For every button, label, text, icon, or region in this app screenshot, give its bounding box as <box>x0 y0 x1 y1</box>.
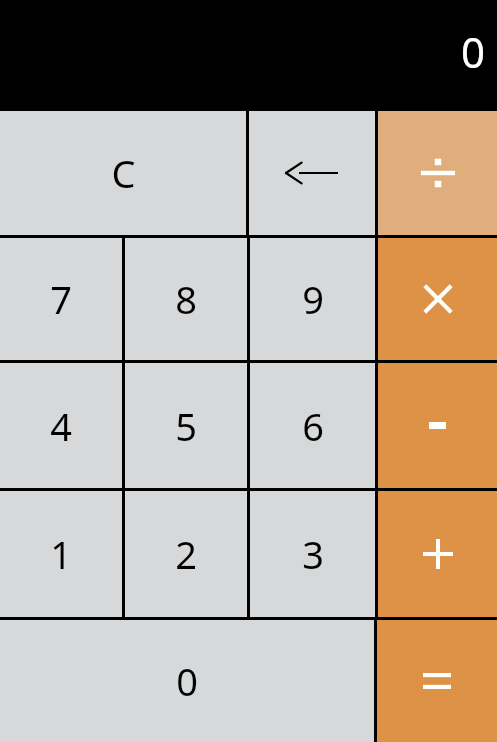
button[interactable]: 4 <box>0 363 122 488</box>
button[interactable]: 5 <box>125 363 247 488</box>
staticText: 1 <box>50 528 72 580</box>
staticText: 0 <box>460 23 485 80</box>
button[interactable]: Add <box>378 491 497 617</box>
staticText: 6 <box>302 400 324 452</box>
staticText: 5 <box>175 400 197 452</box>
button[interactable]: Divide <box>378 111 497 235</box>
staticText: 9 <box>302 273 324 325</box>
button[interactable]: 7 <box>0 238 122 360</box>
button[interactable]: 1 <box>0 491 122 617</box>
button[interactable]: 0 <box>0 620 374 742</box>
staticText: 2 <box>175 528 197 580</box>
staticText: C <box>111 147 136 199</box>
button[interactable]: 2 <box>125 491 247 617</box>
staticText: 8 <box>175 273 197 325</box>
button[interactable]: 9 <box>250 238 375 360</box>
button[interactable]: Equals <box>377 620 497 742</box>
button[interactable]: 6 <box>250 363 375 488</box>
button[interactable]: Multiply <box>378 238 497 360</box>
staticText: 4 <box>50 400 72 452</box>
staticText: 7 <box>50 273 72 325</box>
button[interactable]: Backspace <box>249 111 375 235</box>
staticText: 3 <box>302 528 324 580</box>
button[interactable]: 8 <box>125 238 247 360</box>
button[interactable]: 3 <box>250 491 375 617</box>
button[interactable]: Subtract <box>378 363 497 488</box>
staticText: 0 <box>176 655 198 707</box>
button[interactable]: C <box>0 111 246 235</box>
